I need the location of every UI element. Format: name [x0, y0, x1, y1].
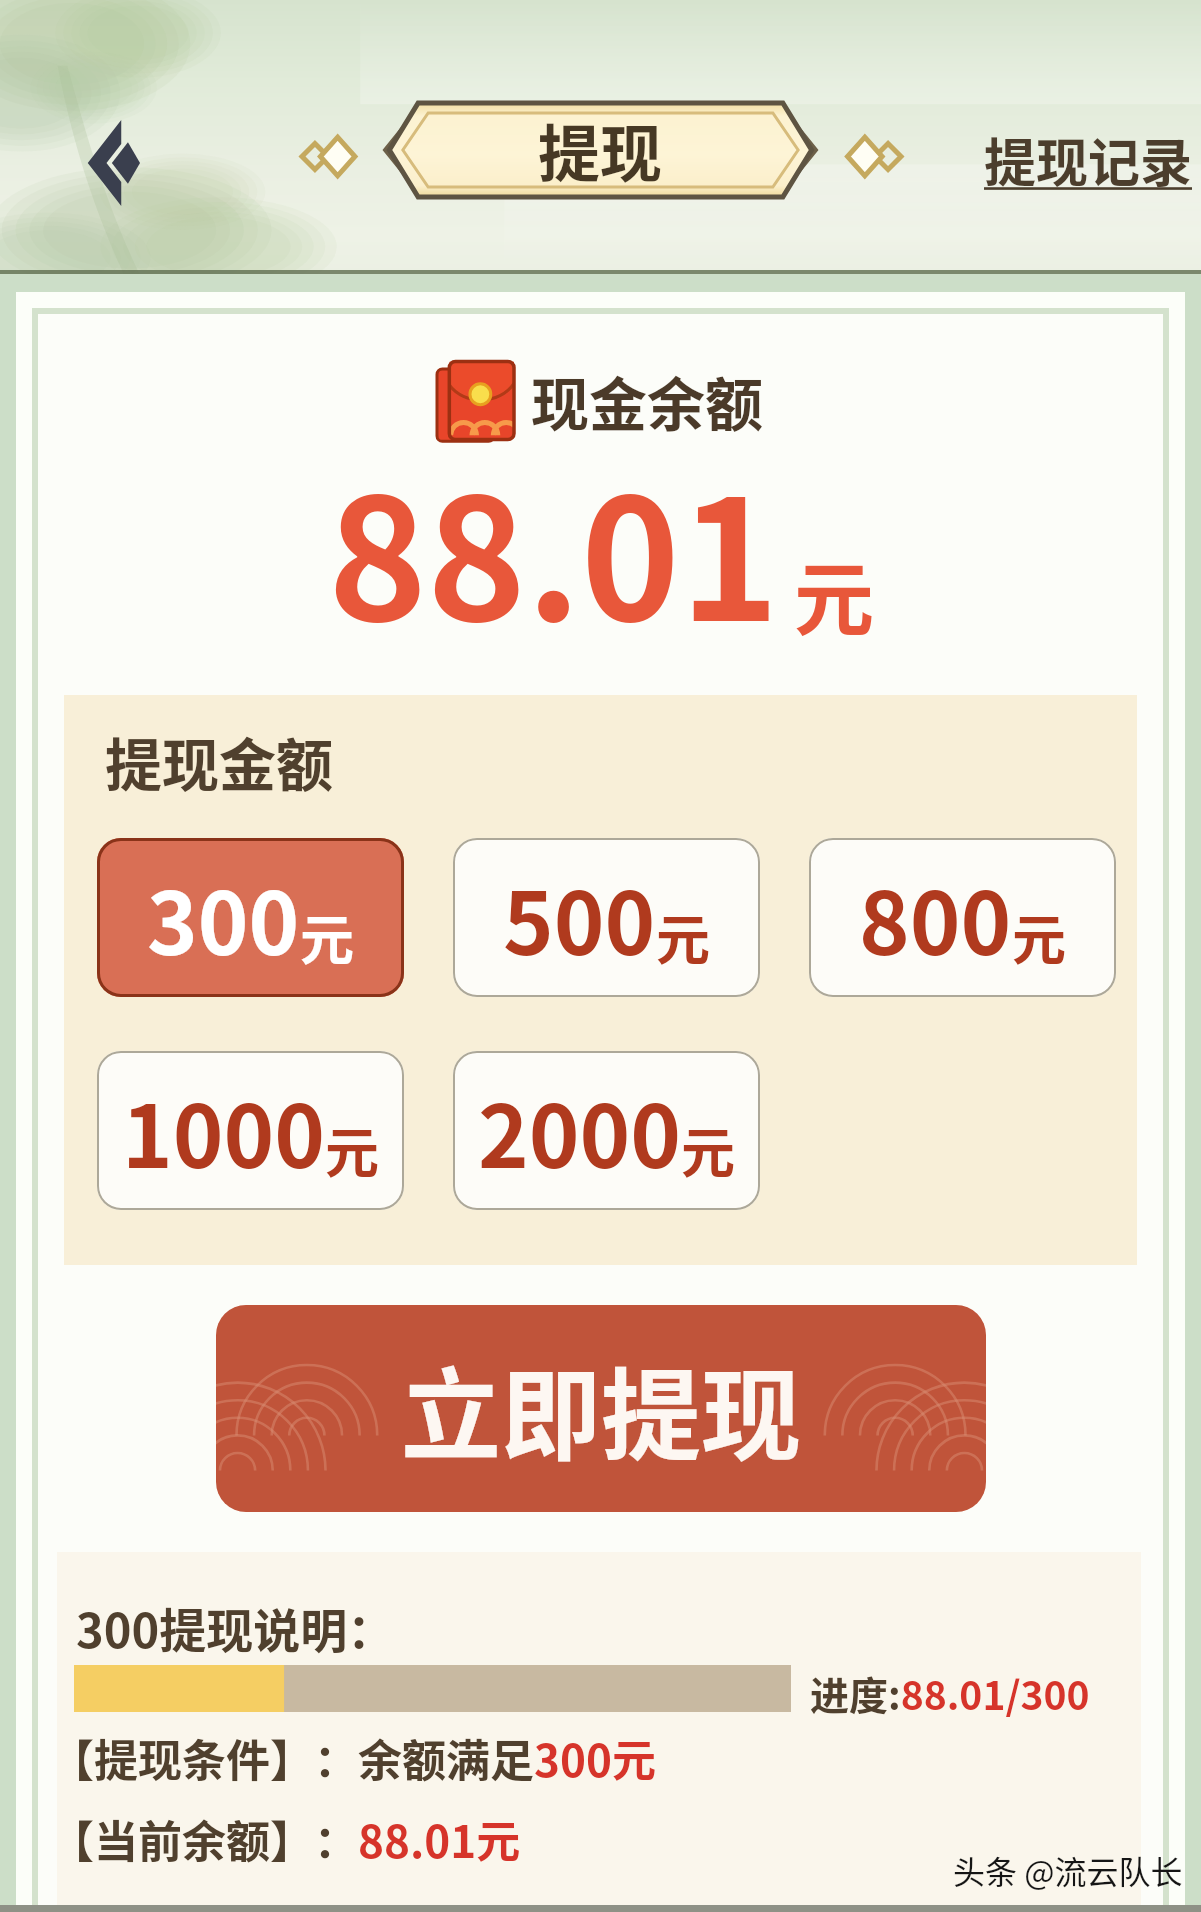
button[interactable]: Back [49, 97, 164, 229]
staticText: 800 [859, 855, 1012, 980]
staticText: 500 [503, 855, 656, 980]
button[interactable]: 提现 [372, 103, 829, 197]
button[interactable]: 500 [453, 838, 760, 997]
staticText: 【当前余额】：88.01元 [50, 1807, 521, 1871]
button[interactable]: 2000 [453, 1051, 760, 1210]
staticText: 头条 @流云队长 [953, 1847, 1183, 1893]
staticText: 元 [656, 897, 710, 975]
staticText: 1000 [122, 1068, 325, 1193]
staticText: 元 [325, 1110, 379, 1188]
staticText: 300 [147, 855, 300, 980]
staticText: 【提现条件】：余额满足300元 [50, 1726, 656, 1790]
staticText: 元 [300, 897, 354, 975]
staticText: 提现金额 [105, 720, 333, 803]
staticText: 元 [681, 1110, 735, 1188]
button[interactable]: 提现记录 [984, 122, 1193, 197]
staticText: 提现 [538, 105, 663, 195]
button[interactable]: 800 [809, 838, 1116, 997]
staticText: 300提现说明： [76, 1593, 395, 1661]
staticText: 提现记录 [984, 122, 1193, 197]
staticText: 元 [794, 535, 874, 651]
staticText: 88.01 [328, 426, 780, 669]
button[interactable]: 300 [97, 838, 404, 997]
staticText: 立即提现 [401, 1336, 801, 1481]
button[interactable]: 立即提现 [216, 1305, 986, 1512]
staticText: 现金余额 [531, 359, 764, 443]
staticText: 元 [1012, 897, 1066, 975]
staticText: 2000 [478, 1068, 681, 1193]
staticText: 进度:88.01/300 [810, 1665, 1090, 1721]
button[interactable]: 1000 [97, 1051, 404, 1210]
